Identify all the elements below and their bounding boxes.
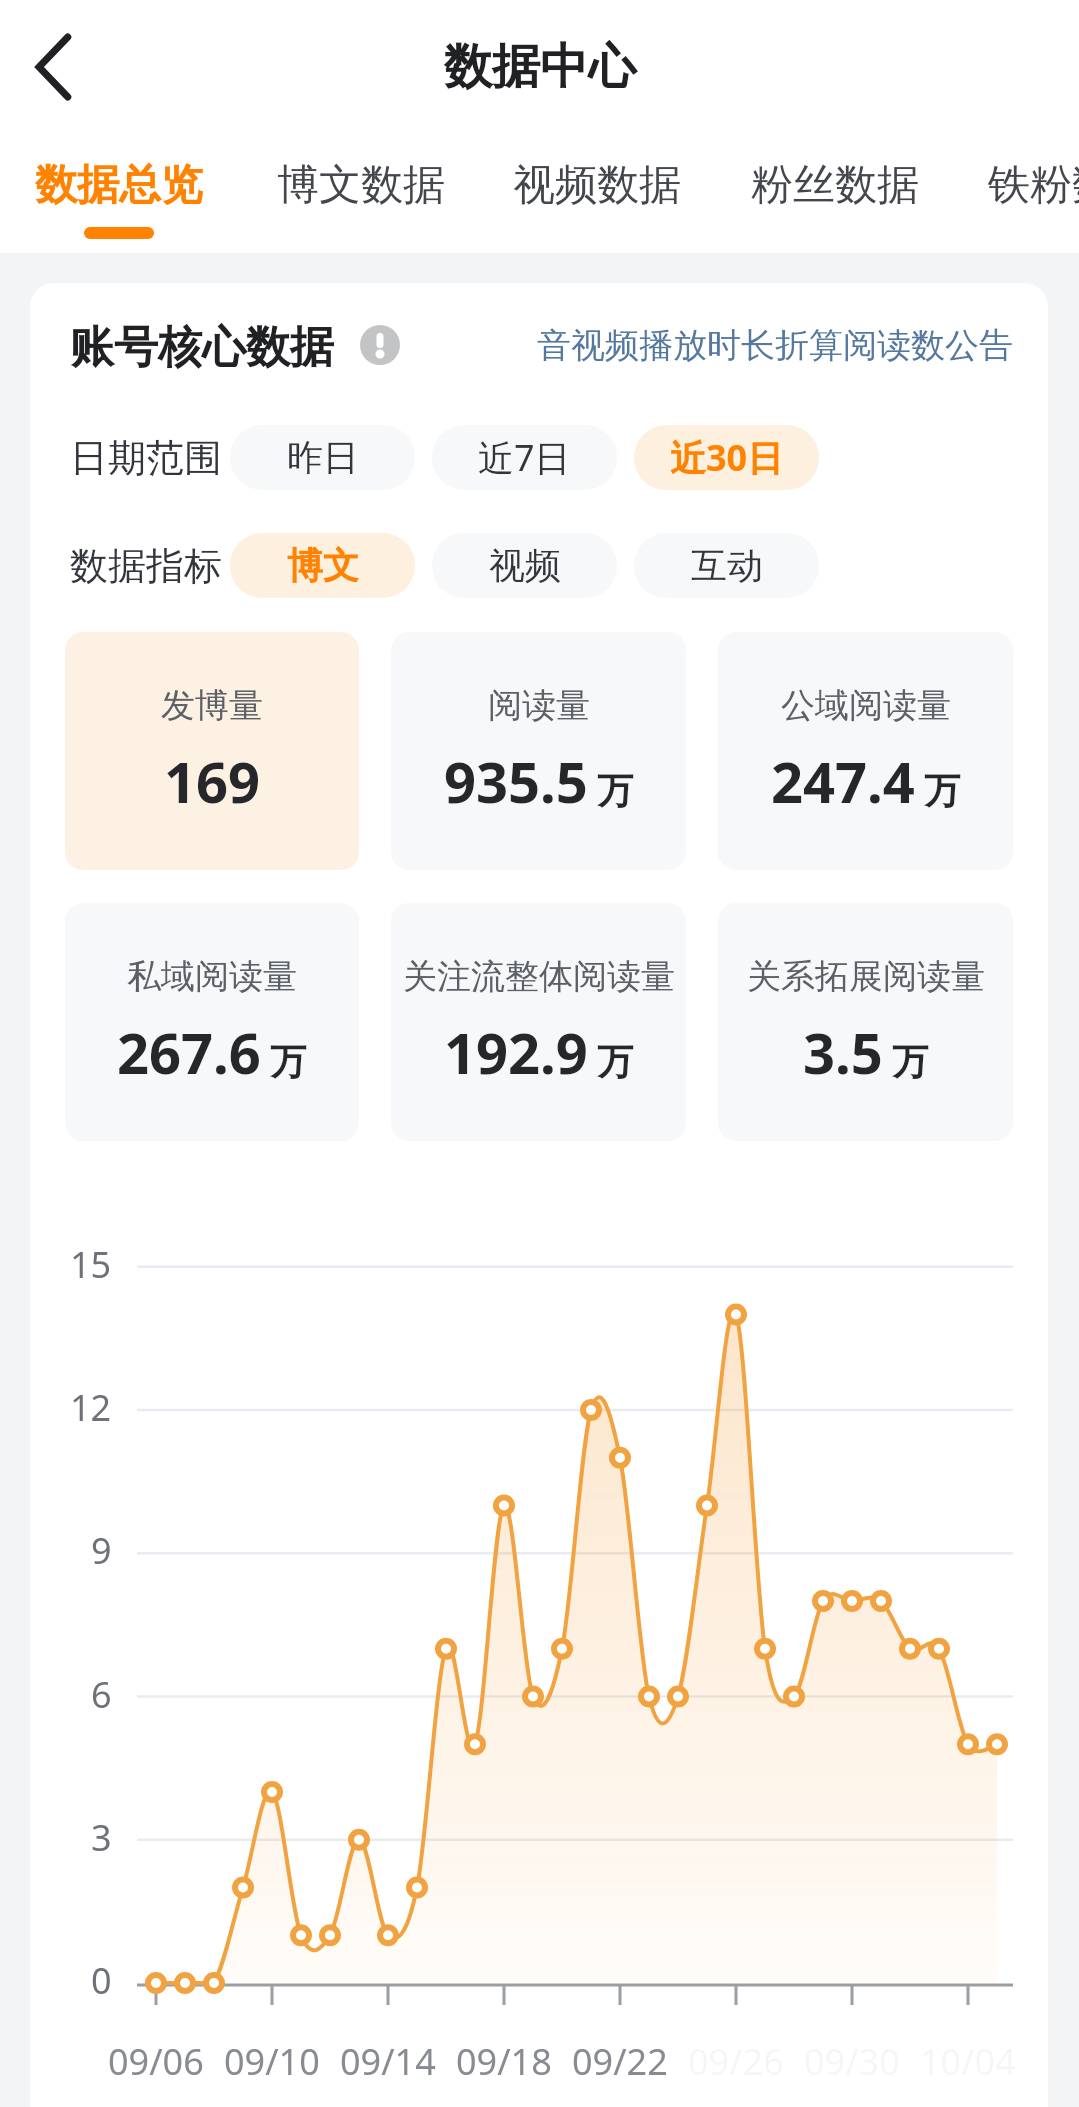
button[interactable]: 私域阅读量 (65, 903, 359, 1141)
staticText: 数据总览 (35, 159, 203, 212)
button[interactable]: 公域阅读量 (718, 632, 1013, 870)
staticText: 09/22 (572, 2037, 668, 2086)
button[interactable]: 关系拓展阅读量 (718, 903, 1013, 1141)
button[interactable]: 博文数据 (277, 133, 445, 253)
staticText: 09/10 (224, 2037, 320, 2086)
staticText: 09/18 (456, 2037, 552, 2086)
button[interactable]: 互动 (634, 533, 819, 598)
staticText: 日期范围 (70, 434, 222, 482)
button[interactable]: 铁粉数据 (988, 133, 1079, 253)
button[interactable]: 视频数据 (513, 133, 681, 253)
button[interactable] (0, 0, 110, 133)
staticText: 关注流整体阅读量 (403, 955, 675, 998)
staticText: 12 (70, 1383, 112, 1432)
staticText: 私域阅读量 (127, 955, 297, 998)
staticText: 192.9 万 (444, 1014, 634, 1090)
staticText: 近30日 (670, 433, 784, 482)
staticText: 09/06 (108, 2037, 204, 2086)
button[interactable]: 关注流整体阅读量 (391, 903, 686, 1141)
staticText: 247.4 万 (771, 743, 961, 819)
staticText: 15 (70, 1240, 112, 1289)
button[interactable]: 音视频播放时长折算阅读数公告 (537, 324, 1013, 367)
button[interactable]: 视频 (432, 533, 617, 598)
staticText: 互动 (691, 543, 763, 588)
staticText: 博文数据 (277, 159, 445, 212)
button[interactable]: 粉丝数据 (751, 133, 919, 253)
staticText: 关系拓展阅读量 (747, 955, 985, 998)
button[interactable]: 近30日 (634, 425, 819, 490)
staticText: 09/30 (804, 2037, 900, 2086)
staticText: 公域阅读量 (781, 684, 951, 727)
staticText: 267.6 万 (117, 1014, 307, 1090)
staticText: 10/04 (920, 2037, 1016, 2086)
staticText: 视频数据 (513, 159, 681, 212)
staticText: 0 (91, 1956, 112, 2005)
staticText: 粉丝数据 (751, 159, 919, 212)
staticText: 发博量 (161, 684, 263, 727)
button[interactable]: 发博量 (65, 632, 359, 870)
button[interactable]: 阅读量 (391, 632, 686, 870)
staticText: 近7日 (478, 433, 571, 482)
button[interactable]: 博文 (230, 533, 415, 598)
staticText: 3 (91, 1813, 112, 1862)
staticText: 169 (164, 743, 261, 819)
staticText: 阅读量 (488, 684, 590, 727)
button[interactable]: 昨日 (230, 425, 415, 490)
staticText: 数据指标 (70, 542, 222, 590)
staticText: 6 (91, 1670, 112, 1719)
staticText: 935.5 万 (444, 743, 634, 819)
staticText: 昨日 (287, 435, 359, 480)
staticText: 数据中心 (444, 37, 636, 97)
staticText: 9 (91, 1526, 112, 1575)
staticText: 09/14 (340, 2037, 436, 2086)
button[interactable]: 数据总览 (35, 133, 203, 253)
staticText: 铁粉数据 (988, 159, 1079, 212)
staticText: 09/26 (688, 2037, 784, 2086)
staticText: 视频 (489, 543, 561, 588)
button[interactable]: 近7日 (432, 425, 617, 490)
staticText: 3.5 万 (803, 1014, 929, 1090)
staticText: 账号核心数据 (70, 320, 334, 370)
staticText: 博文 (287, 543, 359, 588)
